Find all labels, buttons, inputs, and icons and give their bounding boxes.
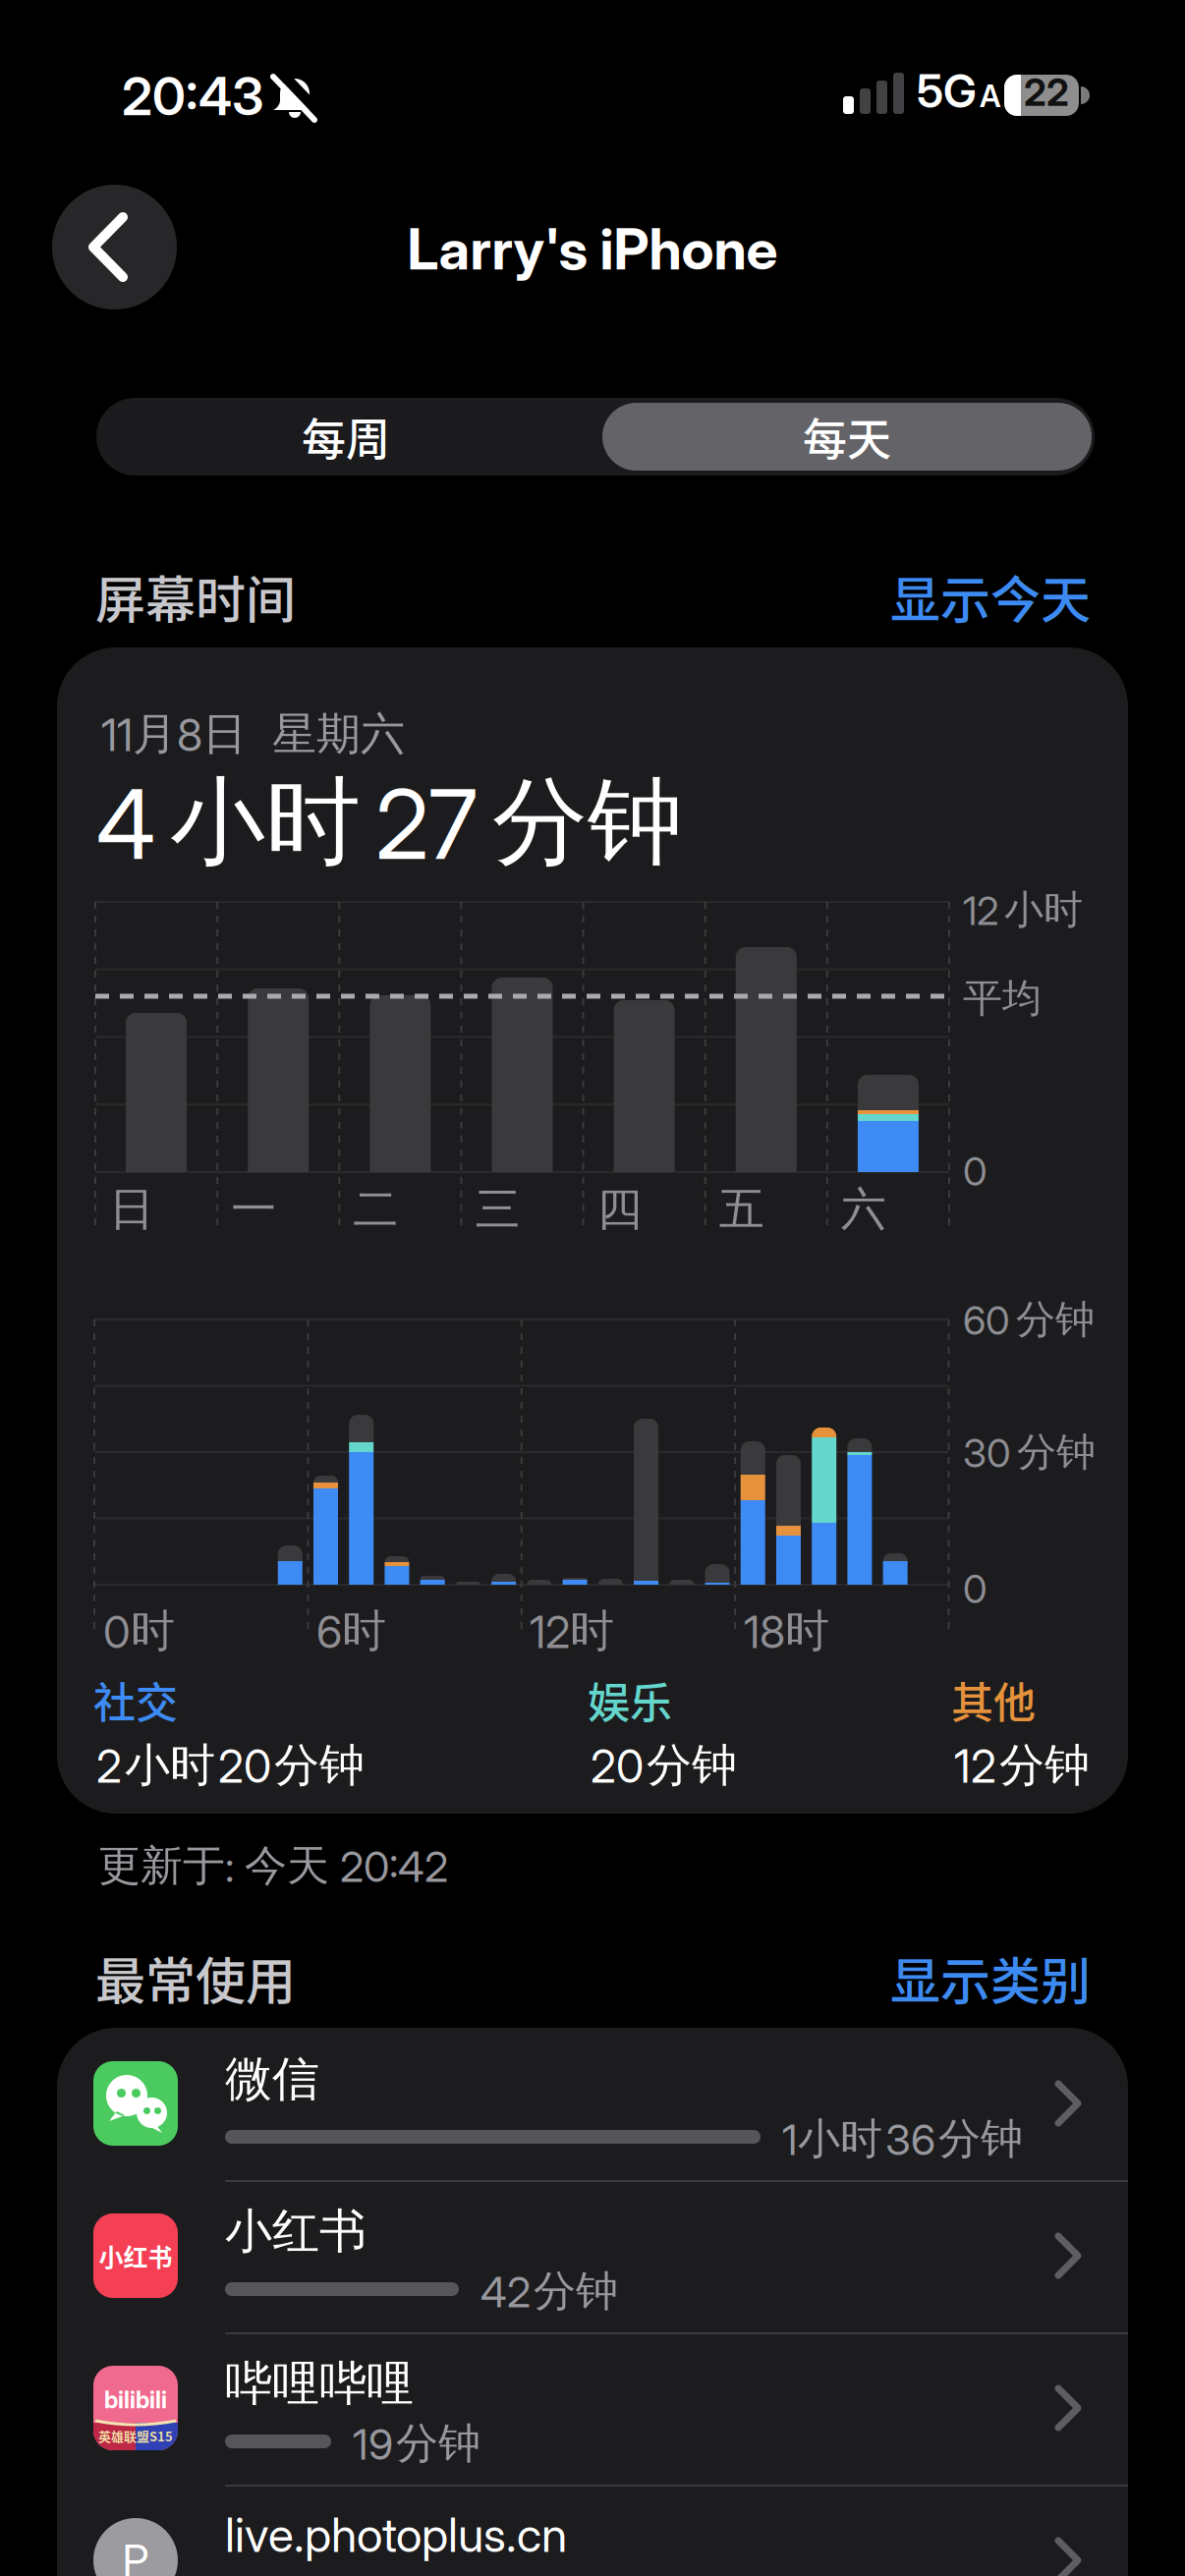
staticText: bilibili — [104, 2385, 167, 2414]
staticText: 30 分钟 — [963, 1428, 1096, 1477]
staticText: 42 分钟 — [480, 2265, 618, 2318]
staticText: 12 分钟 — [954, 1737, 1090, 1794]
staticText: 一 — [231, 1181, 276, 1238]
button[interactable]: 微信 — [57, 2028, 1128, 2180]
staticText: 社交 — [93, 1669, 178, 1730]
staticText: 11月8日 星期六 — [101, 706, 405, 762]
staticText: 2 小时 20 分钟 — [96, 1737, 365, 1794]
staticText: 19 分钟 — [353, 2417, 480, 2470]
staticText: 22 — [1024, 70, 1069, 115]
staticText: 每周 — [302, 405, 390, 469]
staticText: 1小时 36 分钟 — [782, 2112, 1023, 2166]
staticText: 每天 — [803, 405, 891, 469]
staticText: 5G — [917, 64, 977, 119]
button[interactable]: 每周 — [96, 398, 595, 476]
staticText: P — [122, 2534, 149, 2576]
staticText: 小红书 — [99, 2238, 172, 2274]
staticText: Larry's iPhone — [407, 215, 778, 283]
button[interactable]: 小红书 — [57, 2180, 1128, 2332]
staticText: 20 分钟 — [591, 1737, 737, 1794]
staticText: 60 分钟 — [963, 1295, 1095, 1344]
staticText: 三 — [475, 1181, 520, 1238]
button[interactable]: 显示今天 — [890, 560, 1091, 633]
button[interactable]: 返回 — [52, 185, 177, 309]
staticText: 最常使用 — [95, 1941, 296, 2014]
staticText: 0 — [963, 1148, 987, 1195]
staticText: 六 — [841, 1181, 886, 1238]
staticText: 二 — [353, 1181, 398, 1238]
button[interactable]: P — [57, 2485, 1128, 2576]
staticText: 12 小时 — [963, 885, 1083, 935]
staticText: 0 — [963, 1565, 987, 1613]
staticText: 4 小时 27 分钟 — [96, 762, 683, 882]
staticText: 显示今天 — [890, 560, 1091, 633]
staticText: 屏幕时间 — [95, 560, 296, 633]
staticText: 6时 — [316, 1603, 386, 1659]
staticText: 20:43 — [122, 65, 263, 128]
staticText: 0时 — [103, 1603, 175, 1659]
staticText: live.photoplus.cn — [225, 2506, 567, 2563]
button[interactable]: bilibili — [57, 2332, 1128, 2485]
staticText: 四 — [597, 1181, 642, 1238]
staticText: 小红书 — [225, 2202, 367, 2261]
staticText: 英雄联盟S15 — [98, 2427, 173, 2445]
button[interactable]: 每天 — [602, 398, 1092, 476]
button[interactable]: 显示类别 — [890, 1941, 1091, 2014]
staticText: 其他 — [951, 1669, 1036, 1730]
staticText: A — [980, 78, 1000, 114]
staticText: 18时 — [744, 1603, 829, 1659]
staticText: 娱乐 — [588, 1669, 672, 1730]
staticText: 显示类别 — [890, 1941, 1091, 2014]
staticText: 五 — [719, 1181, 764, 1238]
staticText: 日 — [109, 1181, 154, 1238]
staticText: 微信 — [225, 2049, 319, 2109]
staticText: 12时 — [530, 1603, 614, 1659]
staticText: 哔哩哔哩 — [225, 2354, 414, 2413]
staticText: 更新于: 今天 20:42 — [98, 1839, 448, 1892]
staticText: 平均 — [963, 974, 1042, 1023]
